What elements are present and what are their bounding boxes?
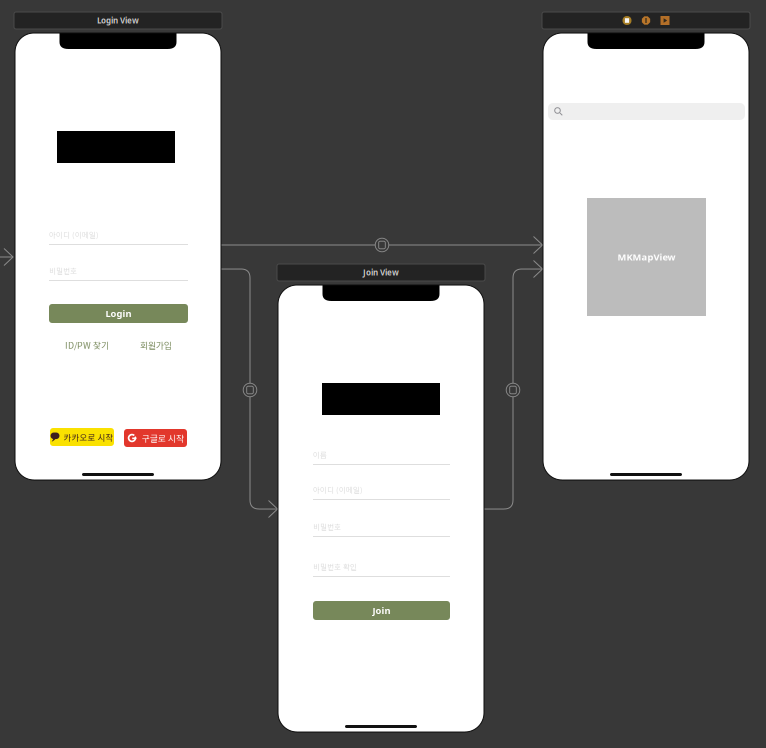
staticText: 비밀번호 <box>49 265 77 276</box>
staticText: 비밀번호 <box>313 521 341 532</box>
staticText: 회원가입 <box>140 339 172 351</box>
button[interactable]: Login <box>49 304 188 323</box>
button[interactable]: Join <box>313 601 450 620</box>
staticText: Login View <box>97 15 139 26</box>
staticText: 아이디 (이메일) <box>49 229 99 240</box>
button[interactable]: 카카오로 시작 <box>50 428 114 446</box>
staticText: Login <box>105 307 131 320</box>
staticText: 아이디 (이메일) <box>313 484 363 495</box>
staticText: 카카오로 시작 <box>63 431 113 443</box>
staticText: MKMapView <box>617 251 675 263</box>
button[interactable]: 구글로 시작 <box>124 429 187 447</box>
button[interactable]: ID/PW 찾기 <box>56 339 118 351</box>
staticText: ID/PW 찾기 <box>65 339 109 351</box>
staticText: 이름 <box>313 449 327 460</box>
staticText: 구글로 시작 <box>142 432 184 444</box>
button[interactable]: 회원가입 <box>125 339 187 351</box>
staticText: 비밀번호 확인 <box>313 561 357 572</box>
staticText: Join <box>372 604 390 617</box>
staticText: Join View <box>363 267 399 278</box>
